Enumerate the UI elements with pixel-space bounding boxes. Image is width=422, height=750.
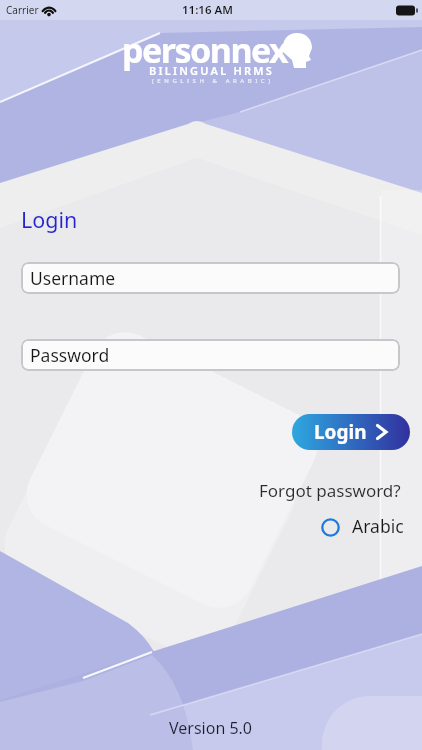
staticText: BILINGUAL HRMS bbox=[149, 63, 274, 78]
staticText: ( E N G L I S H & A R A B I C ) bbox=[152, 77, 271, 85]
button[interactable]: Login bbox=[292, 414, 410, 450]
staticText: personnex bbox=[122, 27, 288, 73]
button[interactable]: Arabic bbox=[320, 514, 404, 538]
staticText: 11:16 AM bbox=[182, 2, 233, 18]
button[interactable]: Username bbox=[21, 262, 400, 294]
staticText: Login bbox=[21, 205, 78, 234]
staticText: Version 5.0 bbox=[169, 717, 253, 739]
staticText: Forgot password? bbox=[259, 479, 401, 502]
button[interactable]: Forgot password? bbox=[259, 479, 401, 502]
staticText: Login bbox=[314, 419, 367, 445]
staticText: Password bbox=[30, 343, 110, 367]
staticText: Arabic bbox=[352, 514, 404, 538]
staticText: Carrier bbox=[6, 3, 39, 17]
button[interactable]: Password bbox=[21, 339, 400, 371]
staticText: Username bbox=[30, 266, 116, 290]
